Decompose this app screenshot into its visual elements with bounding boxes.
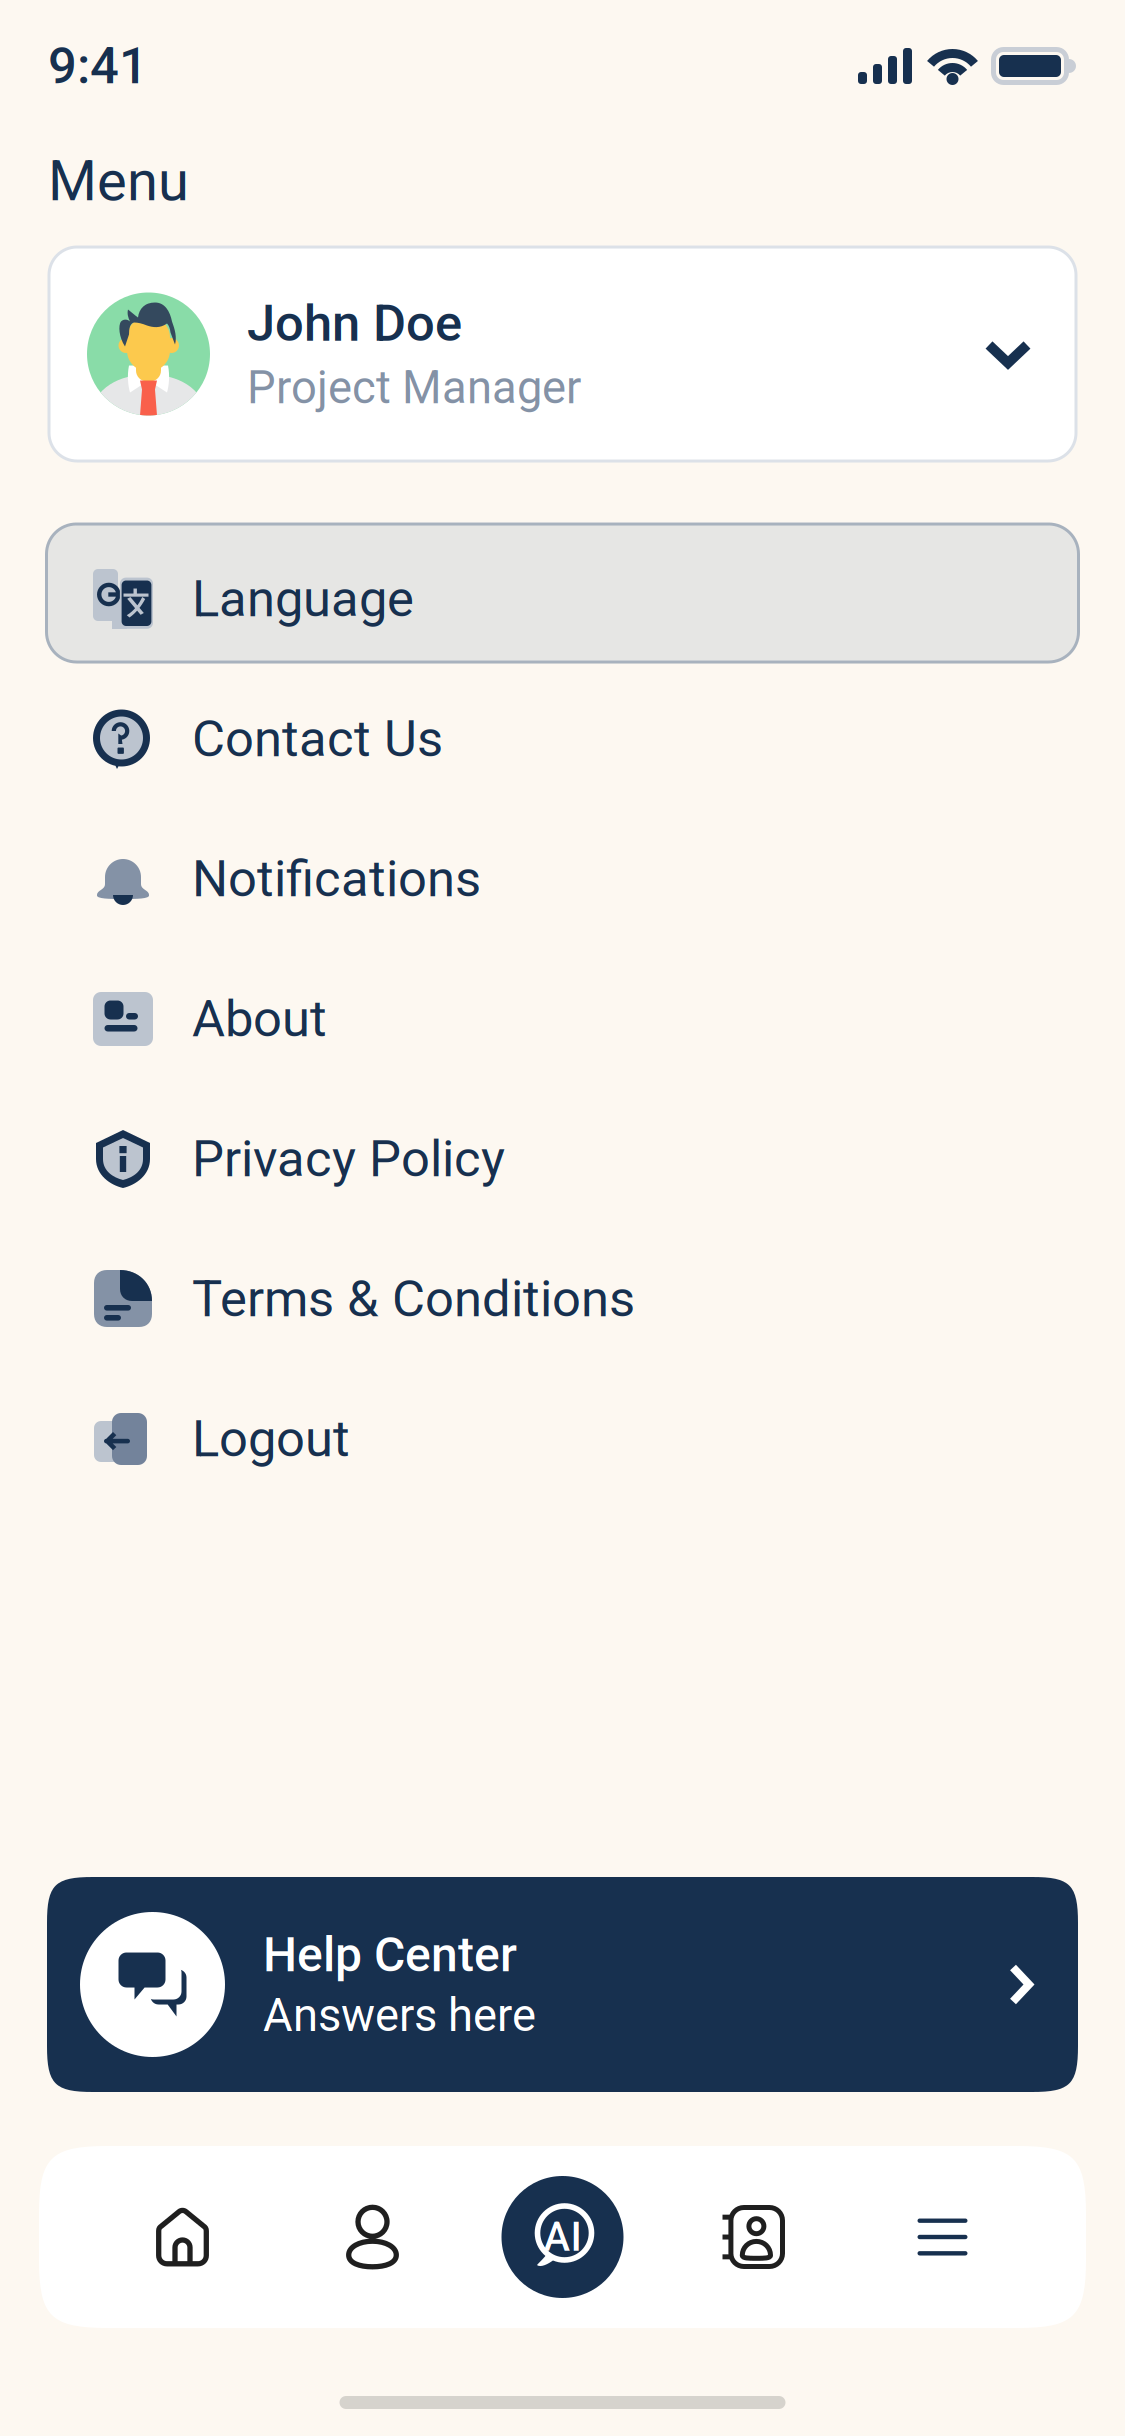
button[interactable]: Terms & Conditions (0, 1223, 1125, 1363)
staticText: Help Center (263, 1927, 517, 1983)
staticText: John Doe (247, 294, 462, 353)
staticText: Privacy Policy (192, 1129, 505, 1189)
staticText: About (192, 989, 327, 1049)
staticText: Notifications (192, 849, 481, 909)
staticText: 9:41 (48, 36, 148, 96)
staticText: Menu (48, 148, 189, 214)
button[interactable]: Help Center (47, 1877, 1078, 2092)
button[interactable]: About (0, 943, 1125, 1083)
staticText: Contact Us (192, 709, 443, 769)
button[interactable]: Profile (277, 2146, 467, 2328)
button[interactable]: Notifications (0, 803, 1125, 943)
button[interactable]: Privacy Policy (0, 1083, 1125, 1223)
button[interactable]: Contact Us (0, 663, 1125, 803)
button[interactable]: AI Assistant (467, 2146, 657, 2328)
button[interactable]: Menu (847, 2146, 1037, 2328)
button[interactable]: John Doe (49, 247, 1076, 461)
staticText: Answers here (263, 1989, 536, 2042)
button[interactable]: Contacts (657, 2146, 847, 2328)
staticText: Terms & Conditions (192, 1269, 635, 1329)
button[interactable]: Home (87, 2146, 277, 2328)
staticText: AI (543, 2214, 581, 2260)
staticText: Project Manager (247, 361, 581, 414)
staticText: Language (192, 569, 414, 629)
button[interactable]: Logout (0, 1363, 1125, 1503)
staticText: Logout (192, 1409, 350, 1469)
button[interactable]: Language (0, 523, 1125, 663)
